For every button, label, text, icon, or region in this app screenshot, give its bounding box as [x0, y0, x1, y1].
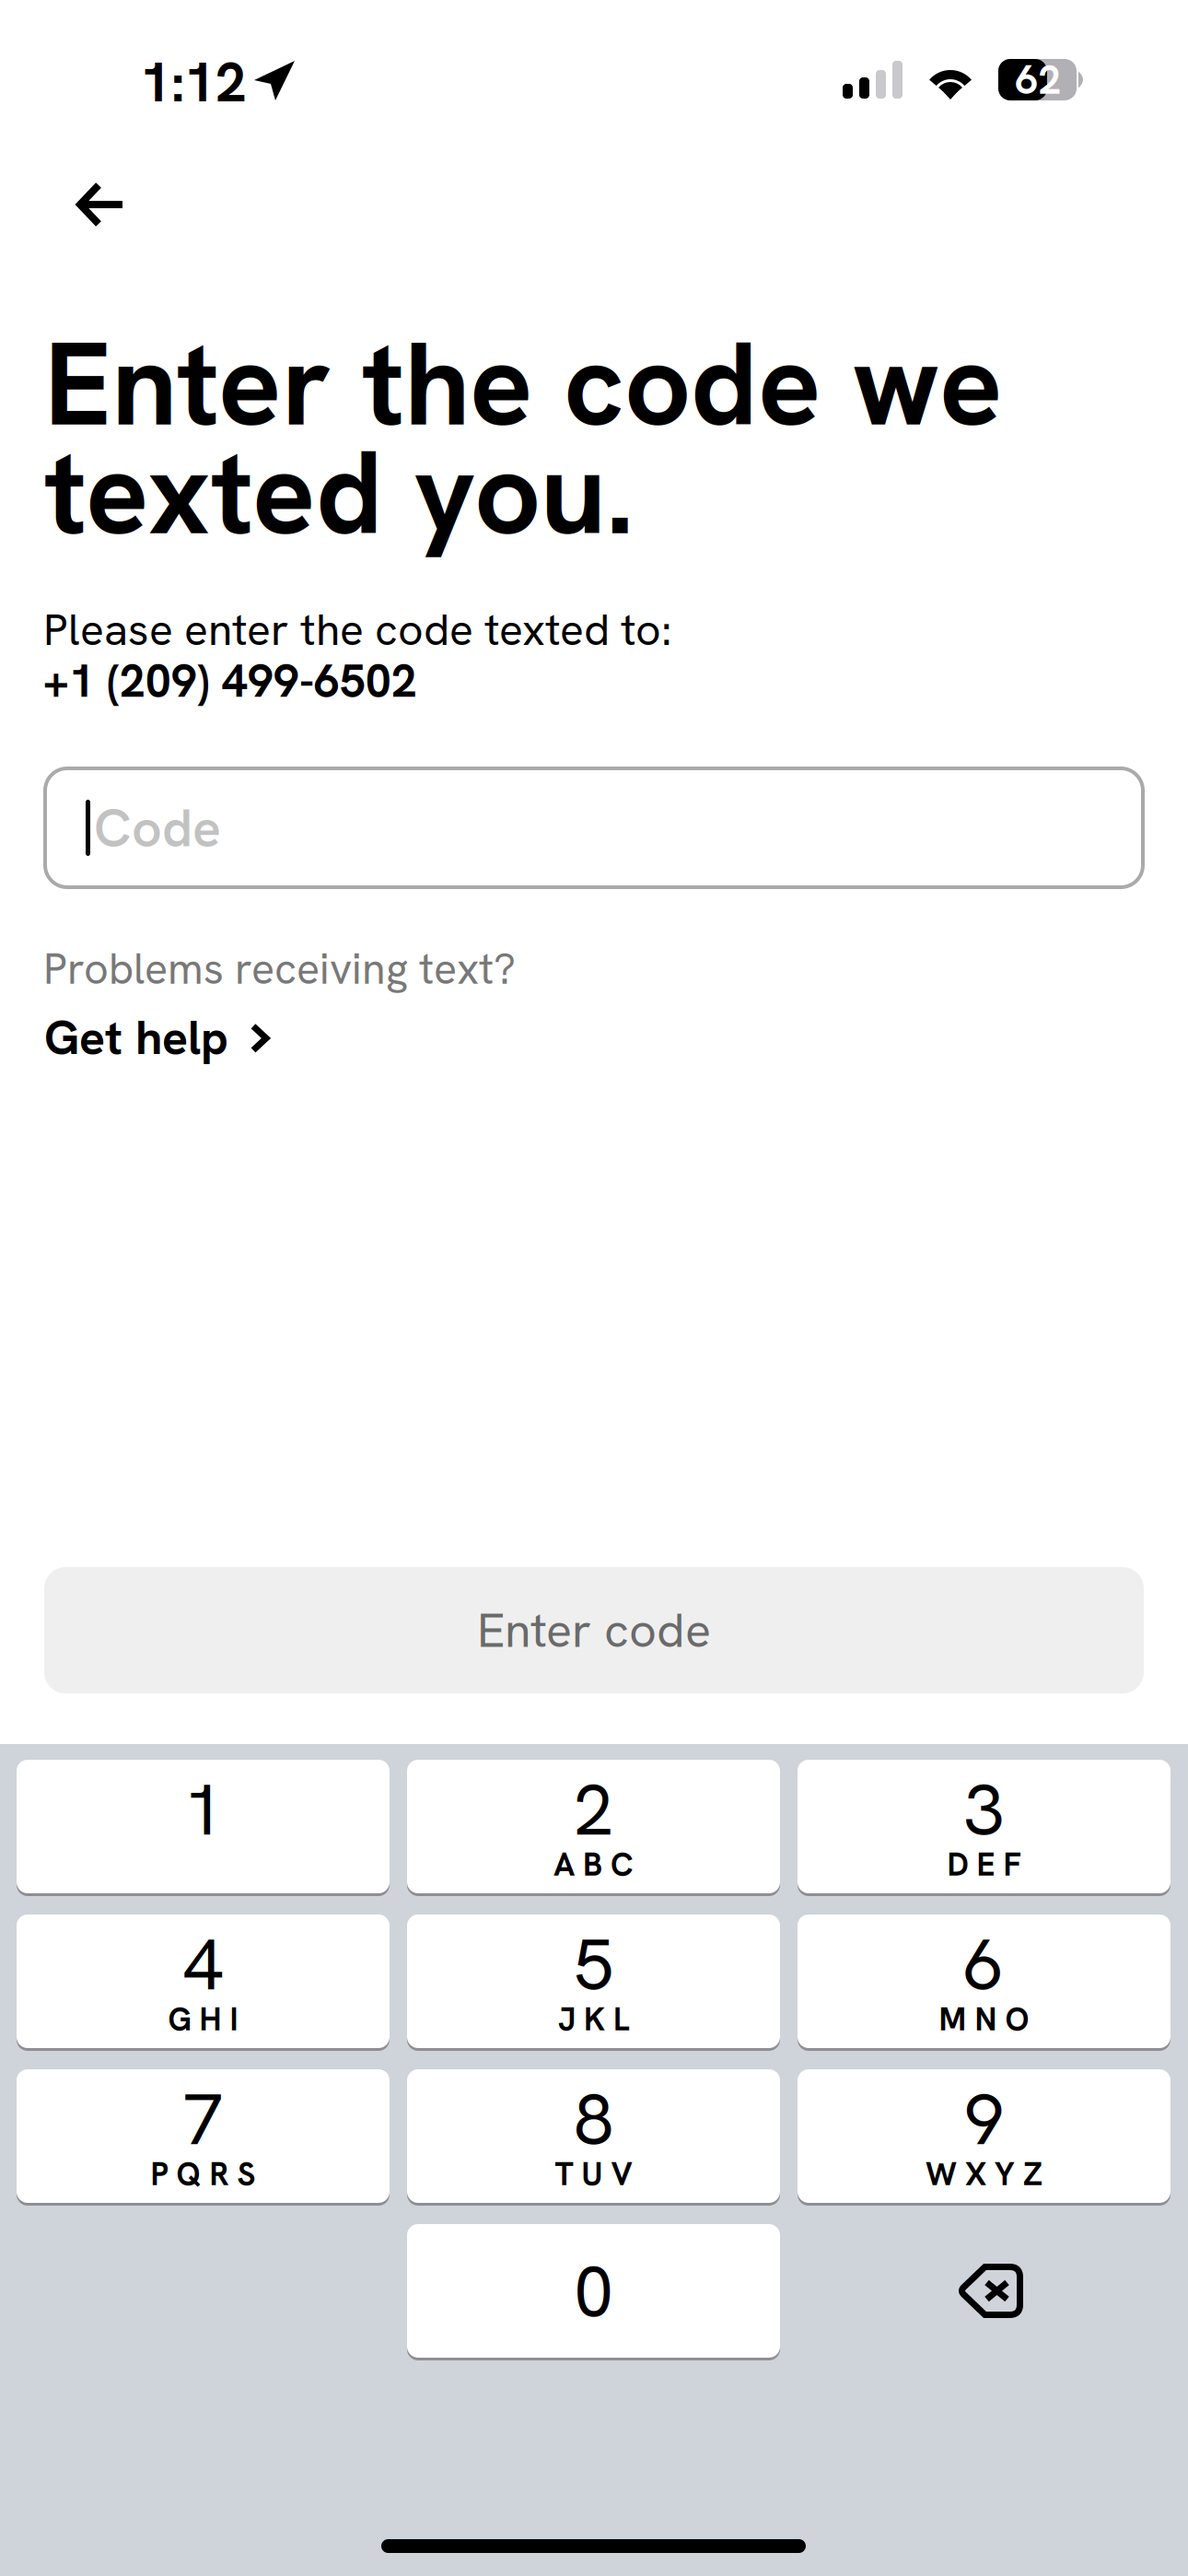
staticText: Get help	[44, 1006, 228, 1069]
staticText: 5	[574, 1918, 613, 2011]
staticText: Problems receiving text?	[43, 941, 516, 997]
staticText: J K L	[558, 1998, 629, 2040]
staticText: Enter code	[477, 1599, 711, 1662]
staticText: P Q R S	[151, 2153, 256, 2195]
button[interactable]: 3	[798, 1760, 1171, 1896]
button[interactable]: Enter code	[44, 1567, 1144, 1693]
button[interactable]: Code	[45, 768, 1143, 887]
staticText: Code	[94, 793, 221, 862]
staticText: 8	[574, 2073, 613, 2166]
staticText: 3	[964, 1763, 1004, 1856]
button[interactable]: Get help	[44, 997, 286, 1078]
button[interactable]: Delete	[798, 2224, 1171, 2358]
button[interactable]: 5	[407, 1914, 780, 2051]
button[interactable]: 0	[407, 2224, 780, 2360]
staticText: M N O	[939, 1998, 1029, 2040]
staticText: 62	[1015, 53, 1061, 106]
staticText: A B C	[553, 1844, 634, 1885]
staticText: 7	[183, 2073, 223, 2166]
staticText: texted you.	[44, 416, 634, 568]
staticText: W X Y Z	[926, 2153, 1042, 2195]
staticText: Please enter the code texted to:	[43, 601, 672, 658]
button[interactable]: 9	[798, 2069, 1171, 2206]
staticText: 6	[964, 1918, 1004, 2011]
staticText: +1 (209) 499-6502	[43, 651, 417, 711]
staticText: 1	[183, 1763, 223, 1856]
button[interactable]: 2	[407, 1760, 780, 1896]
staticText: 9	[964, 2073, 1004, 2166]
staticText: D E F	[947, 1844, 1021, 1885]
button[interactable]: Back	[57, 162, 146, 247]
staticText: 0	[574, 2245, 613, 2338]
button[interactable]: 1	[17, 1760, 390, 1896]
button[interactable]: 4	[17, 1914, 390, 2051]
staticText: 4	[183, 1918, 223, 2011]
staticText: G H I	[168, 1998, 238, 2040]
staticText: 1:12	[140, 46, 247, 118]
button[interactable]: 6	[798, 1914, 1171, 2051]
staticText: 2	[574, 1763, 613, 1856]
staticText: Enter the code we	[44, 308, 1003, 460]
staticText: T U V	[555, 2153, 632, 2195]
button[interactable]: 7	[17, 2069, 390, 2206]
button[interactable]: 8	[407, 2069, 780, 2206]
